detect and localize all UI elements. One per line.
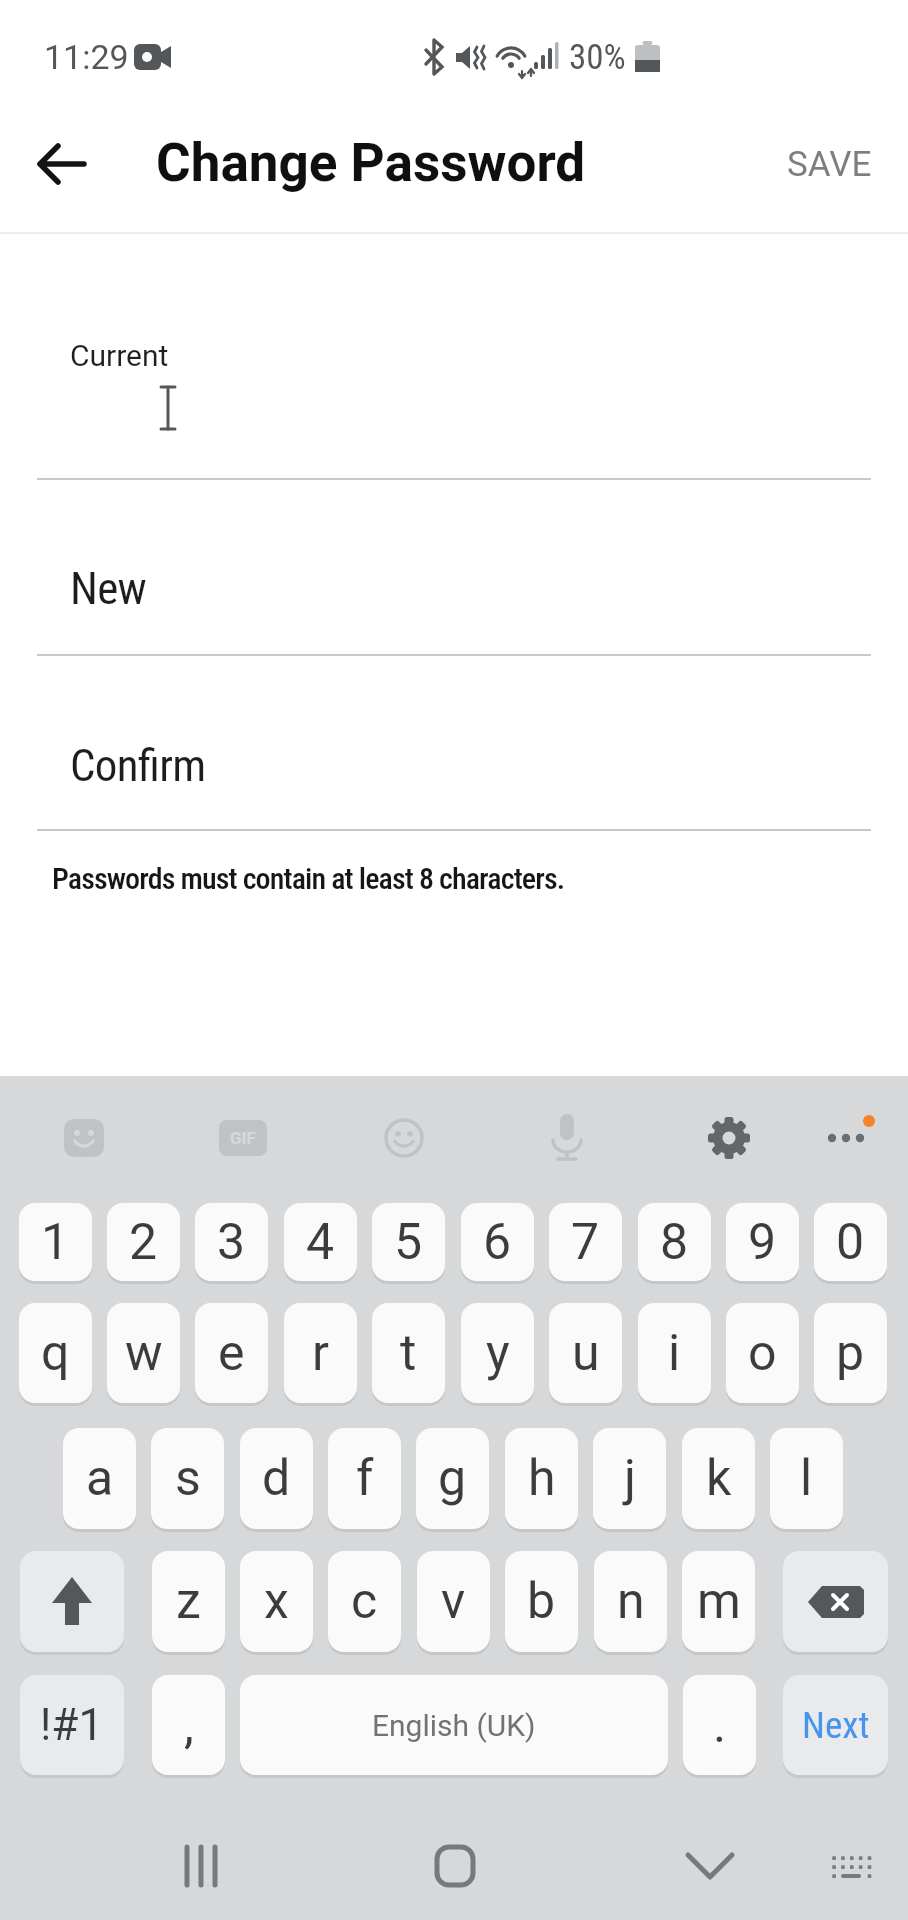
staticText: q [41,1324,70,1383]
staticText: a [86,1449,114,1508]
button[interactable]: b [505,1551,578,1652]
staticText: 8 [660,1213,689,1272]
staticText: l [800,1449,813,1508]
button[interactable]: y [461,1303,534,1403]
staticText: t [400,1324,417,1383]
button[interactable]: GIF [219,1120,267,1156]
button[interactable]: t [372,1303,445,1403]
button[interactable]: e [195,1303,268,1403]
staticText: b [527,1572,556,1631]
button[interactable] [826,1844,878,1892]
staticText: s [175,1449,201,1508]
staticText: e [218,1324,245,1383]
staticText: Passwords must contain at least 8 charac… [52,861,565,896]
staticText: 5 [394,1213,423,1272]
button[interactable]: i [638,1303,711,1403]
staticText: v [441,1572,466,1631]
staticText: y [486,1324,510,1383]
button[interactable]: x [240,1551,313,1652]
staticText: 0 [836,1213,865,1272]
button[interactable]: . [683,1675,756,1775]
button[interactable]: f [328,1428,401,1529]
staticText: Current [70,338,169,373]
button[interactable]: d [240,1428,313,1529]
staticText: 2 [129,1213,158,1272]
button[interactable] [60,1114,108,1162]
button[interactable]: SAVE [776,138,872,190]
staticText: j [624,1449,636,1508]
button[interactable]: o [726,1303,799,1403]
button[interactable]: l [770,1428,843,1529]
button[interactable]: u [549,1303,622,1403]
staticText: 3 [217,1213,246,1272]
staticText: k [706,1449,732,1508]
button[interactable]: m [682,1551,755,1652]
button[interactable]: s [151,1428,224,1529]
button[interactable]: j [593,1428,666,1529]
button[interactable]: , [152,1675,225,1775]
staticText: w [125,1324,163,1383]
button[interactable]: k [682,1428,755,1529]
staticText: !#1 [40,1699,104,1751]
button[interactable]: Next [783,1675,888,1775]
button[interactable] [20,1551,124,1652]
button[interactable]: a [63,1428,136,1529]
staticText: Next [802,1704,870,1747]
staticText: n [617,1572,645,1631]
button[interactable]: c [328,1551,401,1652]
staticText: Change Password [156,132,586,194]
staticText: Confirm [70,739,206,792]
button[interactable]: 3 [195,1203,268,1281]
button[interactable]: q [19,1303,92,1403]
staticText: . [713,1696,727,1755]
staticText: m [697,1572,741,1631]
staticText: z [176,1572,201,1631]
button[interactable]: 4 [284,1203,357,1281]
button[interactable]: 1 [19,1203,92,1281]
button[interactable]: English (UK) [240,1675,668,1775]
button[interactable]: 6 [461,1203,534,1281]
staticText: u [572,1324,600,1383]
button[interactable] [380,1114,428,1162]
button[interactable] [680,1836,740,1896]
button[interactable]: 9 [726,1203,799,1281]
button[interactable]: 0 [814,1203,887,1281]
staticText: 6 [483,1213,512,1272]
staticText: g [438,1449,467,1508]
button[interactable]: 2 [107,1203,180,1281]
button[interactable]: h [505,1428,578,1529]
staticText: d [262,1449,291,1508]
button[interactable]: w [107,1303,180,1403]
staticText: English (UK) [372,1708,536,1743]
staticText: , [184,1696,194,1755]
button[interactable] [705,1114,753,1162]
staticText: h [528,1449,556,1508]
staticText: 11:29 [44,37,129,77]
staticText: r [312,1324,329,1383]
button[interactable] [545,1112,589,1164]
staticText: f [356,1449,374,1508]
button[interactable] [30,132,94,196]
button[interactable]: v [417,1551,490,1652]
button[interactable]: g [416,1428,489,1529]
button[interactable]: p [814,1303,887,1403]
button[interactable] [783,1551,888,1652]
button[interactable]: !#1 [20,1675,124,1775]
button[interactable]: z [152,1551,225,1652]
button[interactable]: n [594,1551,667,1652]
button[interactable]: 7 [549,1203,622,1281]
button[interactable]: r [284,1303,357,1403]
staticText: GIF [230,1128,256,1148]
staticText: o [748,1324,777,1383]
staticText: 9 [748,1213,777,1272]
button[interactable]: 8 [638,1203,711,1281]
button[interactable] [425,1836,485,1896]
staticText: c [351,1572,378,1631]
staticText: i [668,1324,681,1383]
button[interactable] [171,1836,231,1896]
staticText: x [264,1572,289,1631]
staticText: p [836,1324,865,1383]
staticText: 1 [41,1213,70,1272]
button[interactable]: 5 [372,1203,445,1281]
button[interactable] [820,1108,880,1164]
